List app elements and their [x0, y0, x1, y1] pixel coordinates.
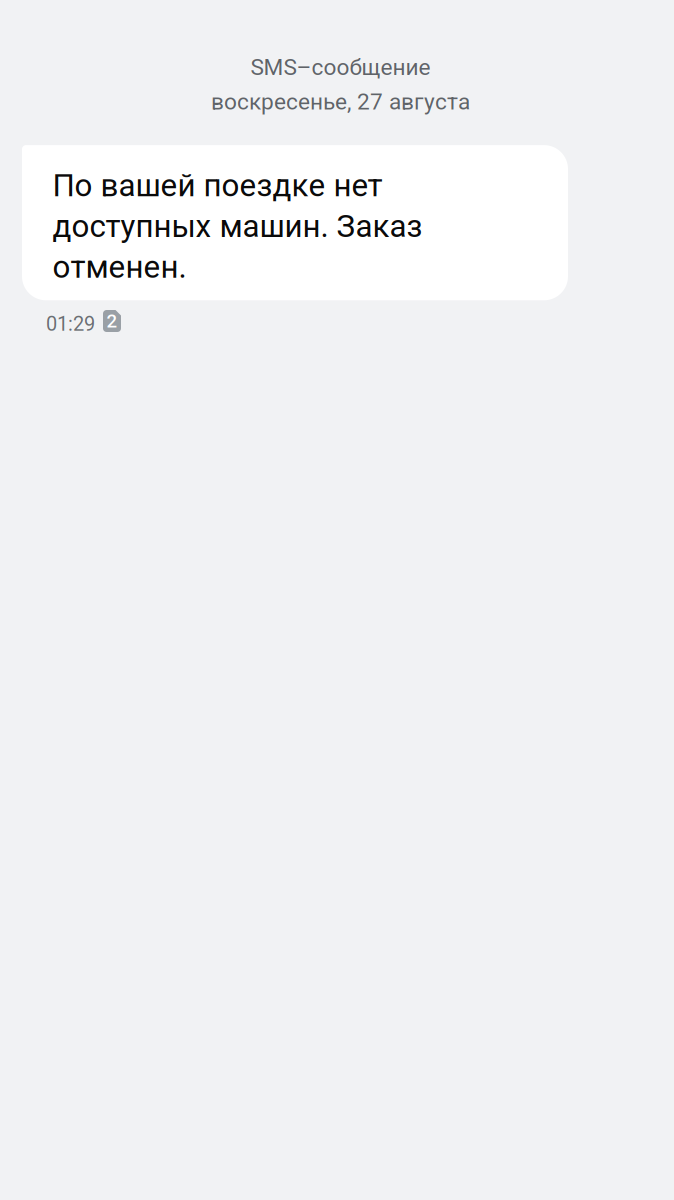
- staticText: воскресенье, 27 августа: [211, 89, 470, 115]
- staticText: 01:29: [46, 312, 95, 336]
- button[interactable]: По вашей поездке нет доступных машин. За…: [22, 145, 568, 300]
- staticText: 2: [106, 310, 117, 332]
- staticText: SMS–сообщение: [250, 54, 430, 81]
- staticText: По вашей поездке нет доступных машин. За…: [52, 167, 422, 285]
